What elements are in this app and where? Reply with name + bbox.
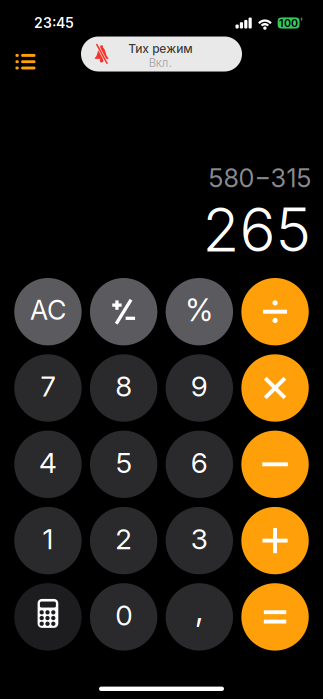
staticText: 23:45	[34, 14, 74, 31]
button[interactable]: Plus	[241, 507, 309, 574]
button[interactable]: Multiply	[241, 354, 309, 422]
staticText: 1	[42, 522, 53, 556]
staticText: %	[185, 291, 213, 329]
staticText: 5	[116, 446, 132, 480]
button[interactable]: 1	[14, 507, 82, 574]
button[interactable]: Minus	[241, 431, 309, 498]
staticText: 100	[279, 16, 298, 29]
staticText: 4	[39, 446, 57, 480]
button[interactable]: Calculator mode	[14, 583, 82, 651]
button[interactable]: 3	[166, 507, 233, 574]
staticText: 8	[115, 369, 132, 403]
button[interactable]: Equals	[241, 583, 309, 651]
button[interactable]: History	[7, 46, 43, 77]
staticText: 580−315	[208, 163, 311, 193]
staticText: Вкл.	[149, 56, 172, 70]
button[interactable]: 6	[166, 431, 233, 498]
button[interactable]: 9	[166, 354, 233, 422]
button[interactable]: 8	[90, 354, 157, 422]
button[interactable]: 7	[14, 354, 82, 422]
button[interactable]: Divide	[241, 278, 309, 345]
button[interactable]: Plus or minus	[90, 278, 157, 345]
staticText: 9	[191, 369, 208, 403]
staticText: ,	[195, 588, 203, 630]
staticText: AC	[30, 294, 66, 326]
button[interactable]: AC	[14, 278, 82, 345]
button[interactable]: 0	[90, 583, 157, 651]
staticText: Тих режим	[128, 41, 192, 56]
button[interactable]: ,	[166, 583, 233, 651]
staticText: 7	[40, 369, 55, 403]
staticText: 265	[202, 193, 311, 266]
button[interactable]: 5	[90, 431, 157, 498]
button[interactable]: %	[166, 278, 233, 345]
staticText: 3	[191, 522, 208, 556]
staticText: 2	[115, 522, 132, 556]
button[interactable]: 2	[90, 507, 157, 574]
staticText: 6	[191, 446, 208, 480]
button[interactable]: 4	[14, 431, 82, 498]
staticText: 0	[115, 598, 132, 632]
